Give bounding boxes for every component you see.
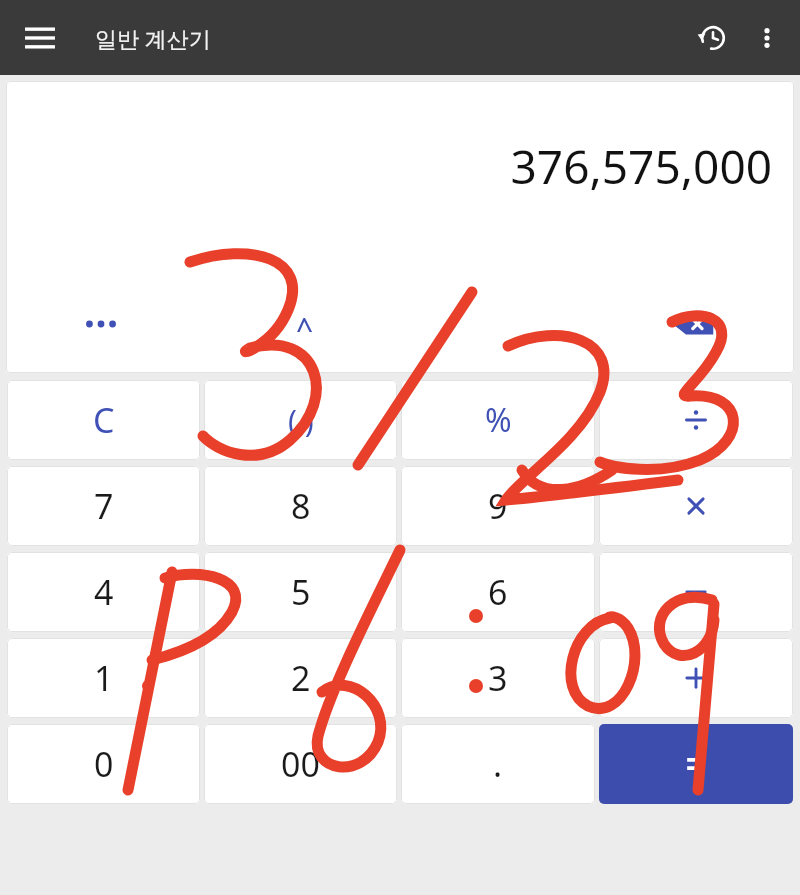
button[interactable]: 8 [204, 466, 397, 546]
staticText: 1 [94, 655, 114, 701]
button[interactable]: . [401, 724, 595, 804]
staticText: . [493, 741, 503, 787]
button[interactable]: C [7, 380, 200, 460]
staticText: 4 [94, 569, 114, 615]
button[interactable]: More options [742, 13, 792, 63]
button[interactable]: 6 [401, 552, 595, 632]
button[interactable]: ( ) [204, 380, 397, 460]
button[interactable]: 9 [401, 466, 595, 546]
button[interactable]: 00 [204, 724, 397, 804]
button[interactable]: 5 [204, 552, 397, 632]
button[interactable]: 1 [7, 638, 200, 718]
staticText: 일반 계산기 [95, 23, 211, 53]
button[interactable]: Equals [599, 724, 793, 804]
button[interactable]: Divide [599, 380, 793, 460]
button[interactable]: ^ [278, 301, 332, 355]
button[interactable]: History [688, 13, 738, 63]
staticText: 9 [488, 483, 508, 529]
staticText: C [93, 397, 115, 443]
staticText: 0 [94, 741, 114, 787]
button[interactable]: Menu [14, 12, 66, 64]
staticText: ^ [296, 308, 314, 349]
button[interactable]: Multiply [599, 466, 793, 546]
staticText: ( ) [288, 400, 314, 441]
button[interactable]: 2 [204, 638, 397, 718]
staticText: 3 [488, 655, 508, 701]
button[interactable]: % [401, 380, 595, 460]
button[interactable]: Backspace [662, 293, 724, 355]
staticText: 7 [94, 483, 114, 529]
button[interactable]: 3 [401, 638, 595, 718]
button[interactable]: Add [599, 638, 793, 718]
button[interactable]: 0 [7, 724, 200, 804]
staticText: 8 [291, 483, 311, 529]
button[interactable]: 7 [7, 466, 200, 546]
button[interactable]: Subtract [599, 552, 793, 632]
staticText: 6 [488, 569, 508, 615]
button[interactable]: More functions [72, 295, 130, 353]
staticText: 00 [281, 741, 320, 787]
button[interactable]: 4 [7, 552, 200, 632]
staticText: 376,575,000 [510, 135, 772, 198]
staticText: 2 [291, 655, 311, 701]
staticText: % [485, 398, 512, 442]
staticText: 5 [291, 569, 311, 615]
